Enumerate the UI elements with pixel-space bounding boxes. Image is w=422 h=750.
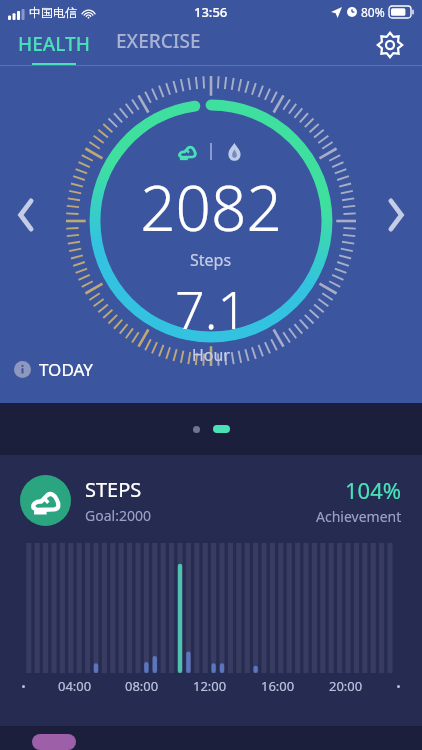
staticText: 04:00: [58, 677, 92, 695]
staticText: 20:00: [329, 677, 363, 695]
button[interactable]: HEALTH: [18, 24, 90, 66]
staticText: 2082: [140, 165, 282, 249]
button[interactable]: Steps: [178, 142, 197, 161]
button[interactable]: Page 2: [213, 425, 230, 433]
staticText: 中国电信: [29, 5, 77, 20]
button[interactable]: Next metric: [32, 734, 76, 750]
staticText: EXERCISE: [116, 28, 201, 54]
button[interactable]: Calories: [225, 142, 244, 161]
button[interactable]: TODAY: [14, 358, 93, 381]
staticText: HEALTH: [18, 31, 90, 57]
staticText: 08:00: [125, 677, 159, 695]
button[interactable]: EXERCISE: [116, 24, 201, 66]
staticText: 104%: [345, 475, 402, 505]
staticText: 80%: [361, 4, 385, 20]
staticText: 13:56: [194, 3, 228, 21]
staticText: Steps: [190, 249, 232, 271]
staticText: TODAY: [39, 358, 93, 381]
button[interactable]: Page 1: [193, 426, 200, 433]
staticText: Goal:2000: [85, 506, 151, 525]
button[interactable]: Previous day: [6, 195, 46, 235]
button[interactable]: Settings: [372, 27, 408, 63]
button[interactable]: Next day: [376, 195, 416, 235]
button[interactable]: STEPS: [0, 455, 422, 726]
staticText: 16:00: [261, 677, 295, 695]
staticText: Achievement: [316, 507, 402, 526]
staticText: Hour: [192, 344, 231, 366]
staticText: 7.1: [175, 273, 248, 344]
staticText: 12:00: [193, 677, 227, 695]
staticText: STEPS: [85, 476, 142, 503]
